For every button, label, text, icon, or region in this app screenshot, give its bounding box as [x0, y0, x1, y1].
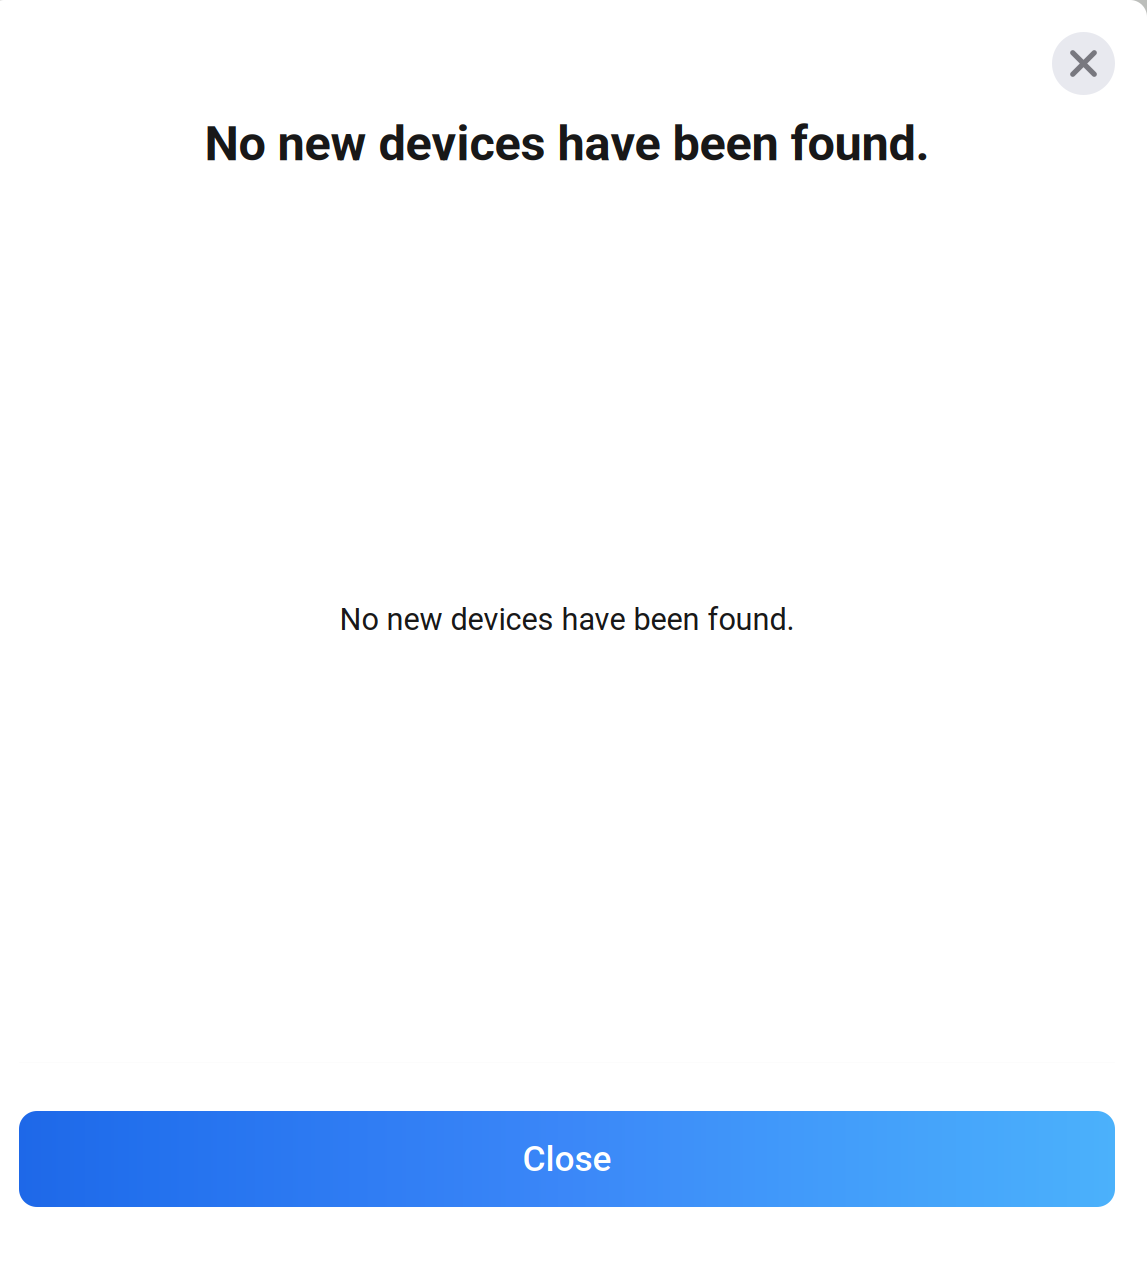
button[interactable]: Close	[1052, 32, 1115, 95]
staticText: No new devices have been found.	[204, 115, 929, 172]
staticText: No new devices have been found.	[339, 601, 794, 637]
staticText: Close	[522, 1138, 611, 1180]
button[interactable]: Close	[19, 1111, 1115, 1207]
